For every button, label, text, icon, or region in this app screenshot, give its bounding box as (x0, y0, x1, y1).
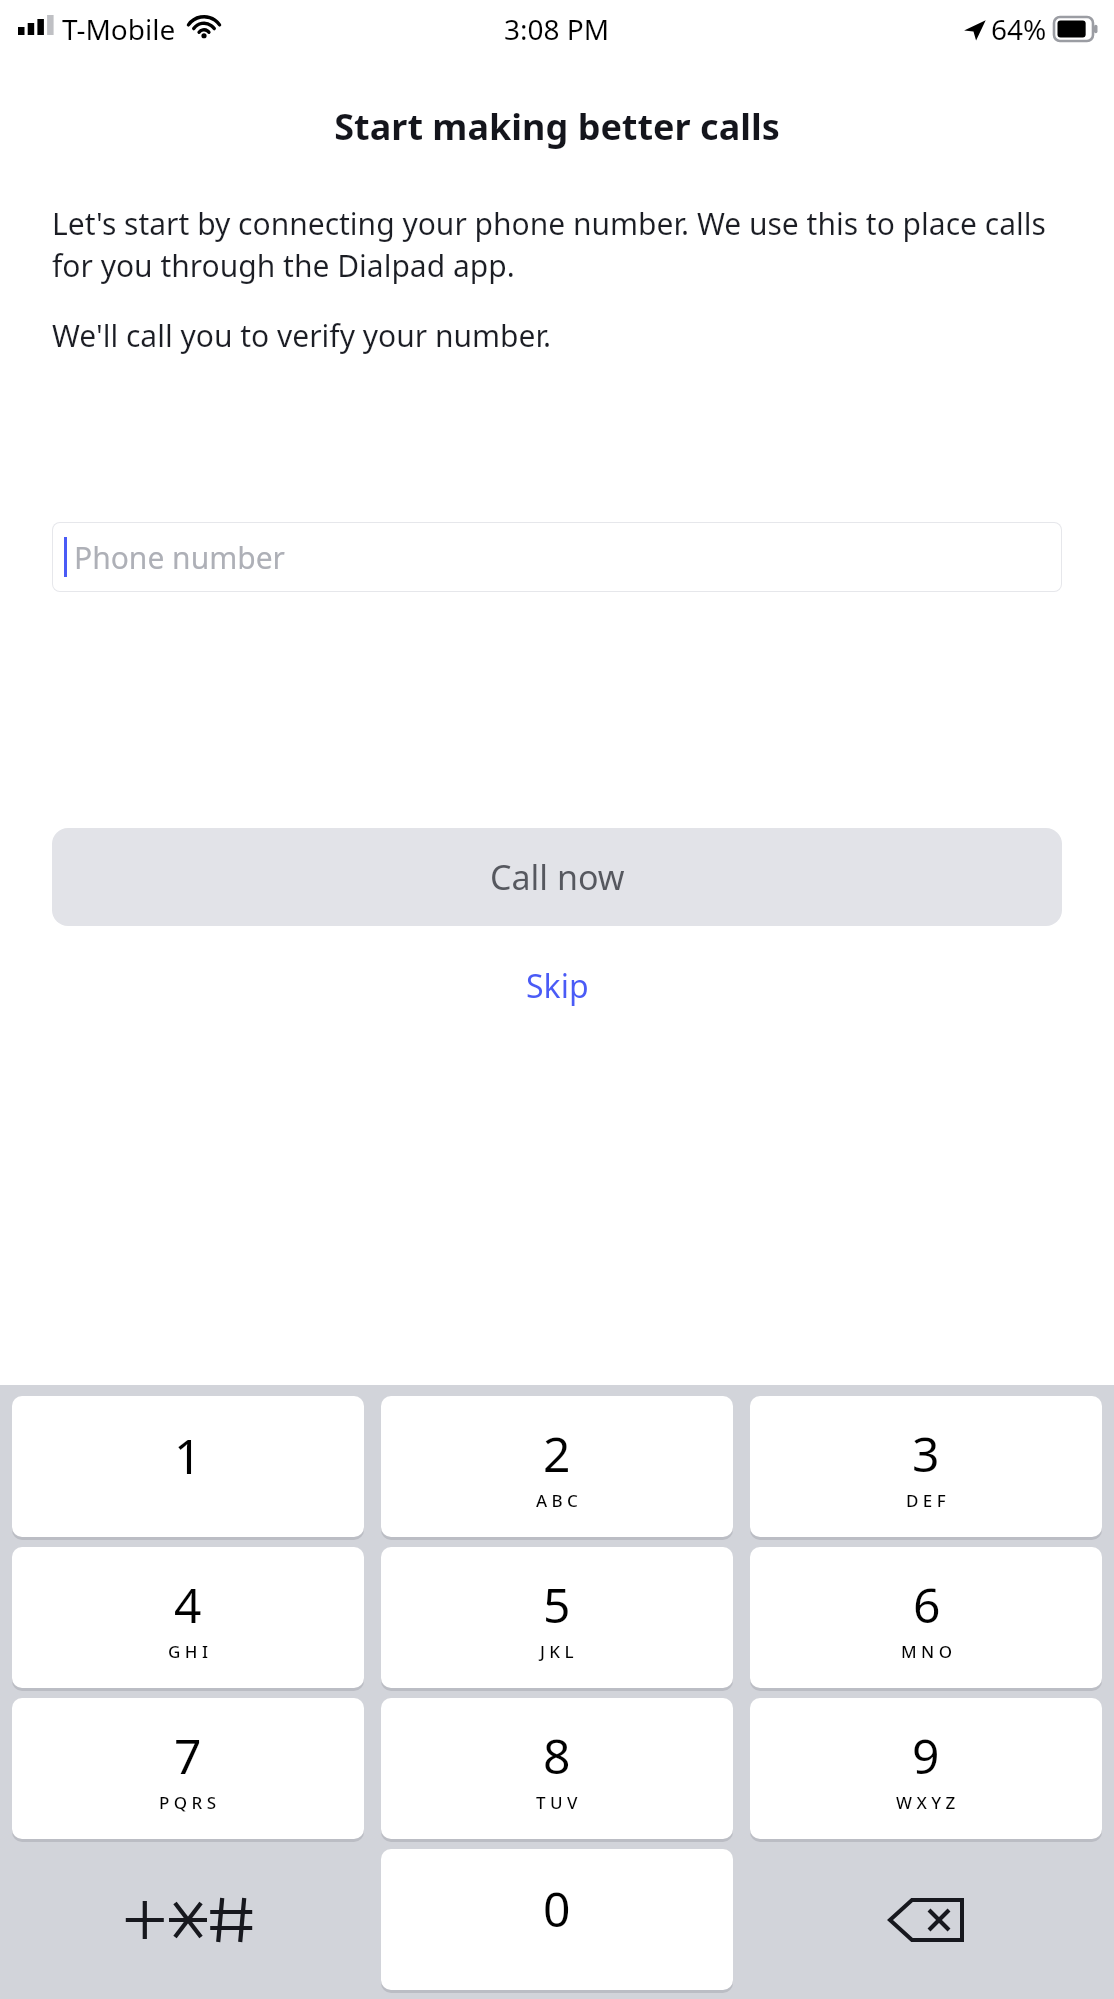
button[interactable]: Phone number (52, 522, 1062, 592)
staticText: P Q R S (159, 1791, 217, 1814)
button[interactable]: Plus star pound (12, 1849, 364, 1990)
staticText: G H I (168, 1640, 208, 1663)
staticText: 64% (991, 10, 1047, 48)
staticText: 2 (543, 1421, 571, 1486)
button[interactable]: 1 (12, 1396, 364, 1537)
button[interactable]: 4 (12, 1547, 364, 1688)
staticText: T U V (536, 1791, 578, 1814)
button[interactable]: Call now (52, 828, 1062, 926)
staticText: J K L (540, 1640, 574, 1663)
staticText: 4 (174, 1572, 202, 1637)
staticText: 8 (543, 1723, 571, 1788)
staticText: D E F (906, 1489, 946, 1512)
button[interactable]: 7 (12, 1698, 364, 1839)
button[interactable]: 5 (381, 1547, 733, 1688)
button[interactable]: 2 (381, 1396, 733, 1537)
staticText: T-Mobile (62, 10, 176, 48)
staticText: W X Y Z (896, 1791, 956, 1814)
staticText: A B C (536, 1489, 578, 1512)
staticText: M N O (901, 1640, 952, 1663)
staticText: Skip (526, 964, 589, 1008)
button[interactable]: Skip (496, 956, 619, 1016)
staticText: 3 (912, 1421, 940, 1486)
staticText: 9 (912, 1723, 940, 1788)
button[interactable]: 0 (381, 1849, 733, 1990)
staticText: Let's start by connecting your phone num… (52, 203, 1080, 286)
staticText: 3:08 PM (504, 10, 610, 48)
staticText: 7 (174, 1723, 202, 1788)
staticText: Start making better calls (0, 102, 1114, 151)
staticText: 0 (543, 1876, 571, 1941)
staticText: 6 (913, 1572, 941, 1637)
staticText: 1 (174, 1423, 202, 1488)
staticText: We'll call you to verify your number. (52, 315, 552, 356)
staticText: 5 (543, 1572, 571, 1637)
staticText: Phone number (74, 537, 285, 578)
button[interactable]: 9 (750, 1698, 1102, 1839)
button[interactable]: 6 (750, 1547, 1102, 1688)
staticText: Call now (490, 854, 625, 900)
button[interactable]: Delete (750, 1849, 1102, 1990)
button[interactable]: 3 (750, 1396, 1102, 1537)
button[interactable]: 8 (381, 1698, 733, 1839)
